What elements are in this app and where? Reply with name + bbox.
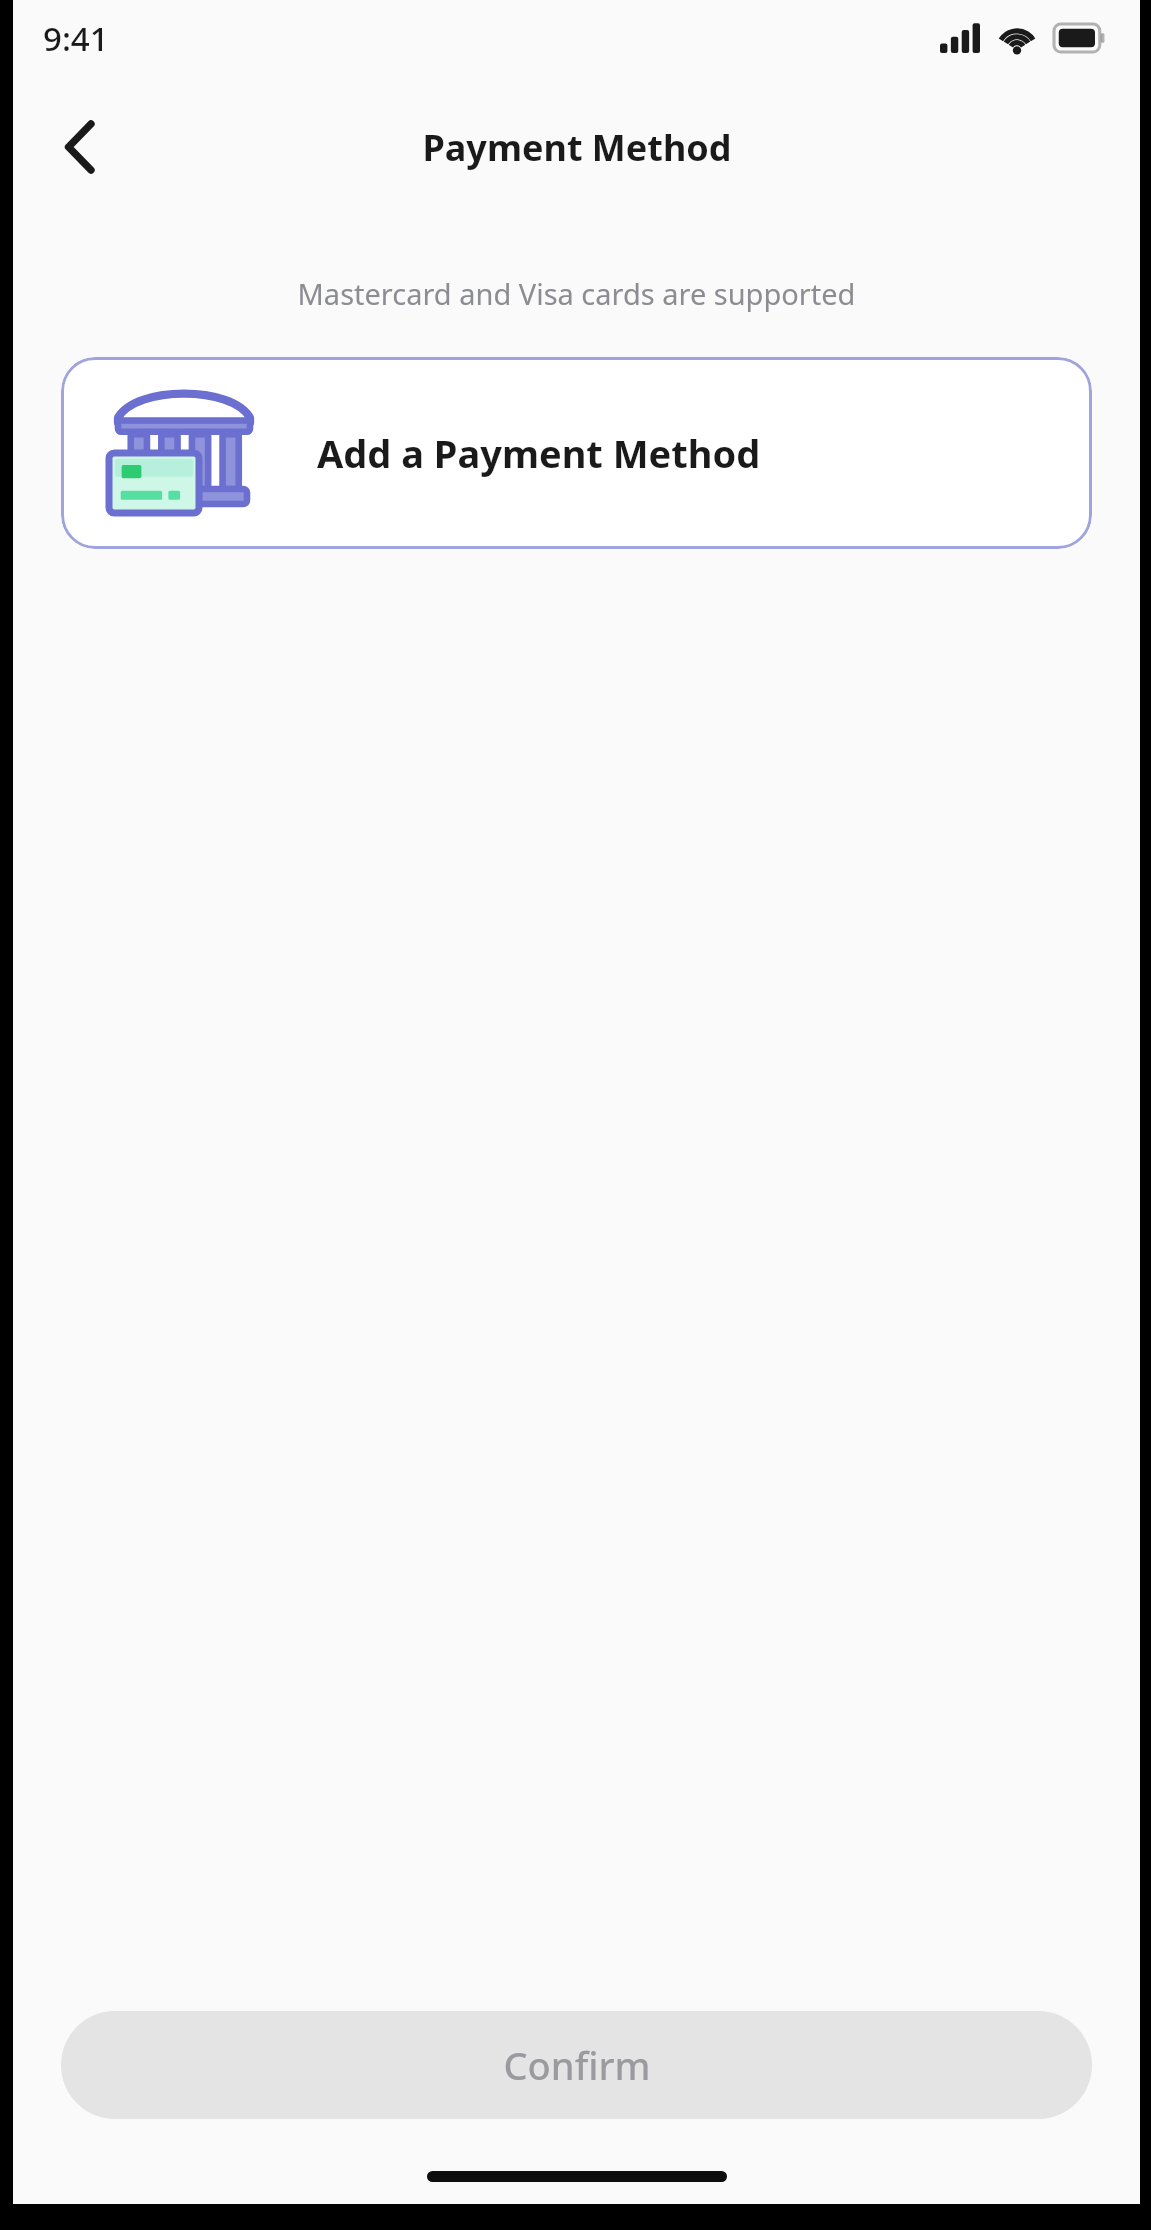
button[interactable]: Add a Payment Method	[61, 357, 1092, 549]
button[interactable]: Confirm	[61, 2011, 1092, 2119]
staticText: Payment Method	[422, 123, 732, 172]
button[interactable]: Back	[41, 108, 119, 186]
staticText: Confirm	[503, 2039, 651, 2091]
staticText: Add a Payment Method	[317, 427, 761, 479]
staticText: 9:41	[43, 16, 109, 61]
staticText: Mastercard and Visa cards are supported	[13, 274, 1140, 313]
